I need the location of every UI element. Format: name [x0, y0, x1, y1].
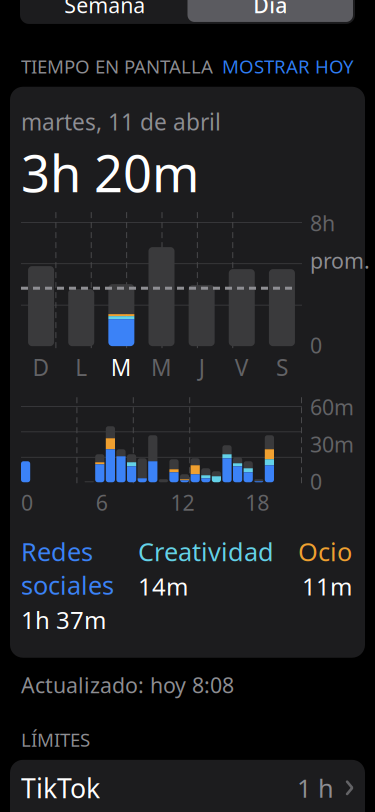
staticText: 30m: [310, 430, 354, 458]
staticText: TIEMPO EN PANTALLA: [21, 54, 213, 79]
button[interactable]: Semana: [22, 0, 187, 22]
staticText: Día: [253, 0, 287, 19]
staticText: 11m: [302, 570, 352, 602]
staticText: Actualizado: hoy 8:08: [21, 671, 234, 699]
button[interactable]: TikTok: [10, 760, 365, 812]
staticText: 12: [170, 488, 194, 516]
staticText: J: [199, 352, 205, 382]
staticText: Ocio: [298, 535, 352, 568]
staticText: 0: [21, 488, 33, 516]
staticText: 3h 20m: [21, 139, 199, 206]
staticText: 1 h: [297, 771, 334, 805]
staticText: L: [75, 352, 87, 382]
button[interactable]: Día: [187, 0, 353, 22]
staticText: Redes sociales: [21, 535, 114, 602]
staticText: 1h 37m: [21, 604, 106, 636]
staticText: prom.: [310, 246, 370, 275]
staticText: MOSTRAR HOY: [222, 54, 354, 79]
button[interactable]: MOSTRAR HOY: [222, 54, 354, 79]
staticText: 14m: [138, 570, 188, 602]
staticText: 0: [310, 467, 322, 496]
staticText: 18: [245, 488, 269, 516]
staticText: Creatividad: [138, 535, 274, 568]
staticText: M: [151, 352, 172, 382]
staticText: S: [276, 352, 288, 382]
staticText: V: [235, 352, 249, 382]
staticText: D: [33, 352, 50, 382]
staticText: M: [111, 352, 132, 382]
staticText: Semana: [64, 0, 145, 19]
staticText: 6: [96, 488, 108, 516]
staticText: 8h: [310, 209, 335, 237]
staticText: TikTok: [21, 770, 100, 805]
staticText: martes, 11 de abril: [21, 107, 221, 137]
staticText: 0: [310, 331, 322, 359]
staticText: LÍMITES: [21, 727, 90, 752]
staticText: 60m: [310, 393, 354, 421]
